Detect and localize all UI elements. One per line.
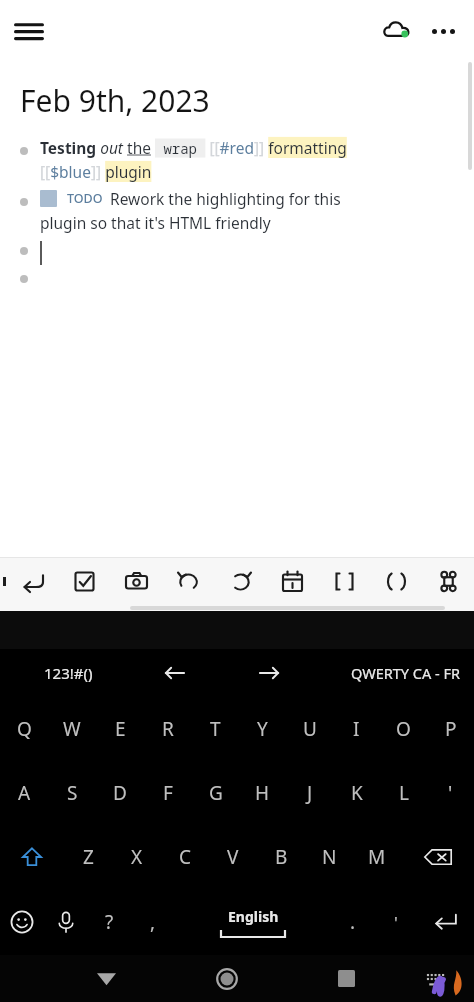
button[interactable]: More options: [420, 8, 466, 54]
button[interactable]: Emoji: [0, 889, 44, 955]
staticText: B: [275, 844, 288, 870]
button[interactable]: A: [0, 761, 48, 825]
button[interactable]: H: [239, 761, 286, 825]
button[interactable]: Backspace: [401, 825, 474, 889]
staticText: M: [368, 844, 386, 870]
button[interactable]: W: [48, 697, 96, 761]
button[interactable]: O: [380, 697, 427, 761]
button[interactable]: N: [305, 825, 353, 889]
button[interactable]: G: [192, 761, 239, 825]
staticText: D: [113, 780, 127, 806]
staticText: R: [162, 716, 174, 742]
button[interactable]: Home: [198, 955, 255, 1002]
button[interactable]: Indent: [8, 558, 59, 604]
button[interactable]: B: [257, 825, 305, 889]
button[interactable]: Bullet: [20, 198, 28, 206]
button[interactable]: D: [96, 761, 144, 825]
button[interactable]: Z: [64, 825, 113, 889]
staticText: ,: [150, 909, 156, 935]
button[interactable]: Y: [239, 697, 286, 761]
staticText: V: [227, 844, 239, 870]
staticText: U: [303, 716, 317, 742]
button[interactable]: ': [374, 889, 417, 955]
button[interactable]: Move cursor right: [246, 650, 292, 696]
button[interactable]: Switch keyboard: [406, 955, 463, 1002]
button[interactable]: QWERTY CA - FR: [351, 663, 460, 683]
staticText: J: [307, 780, 313, 806]
staticText: A: [18, 780, 31, 806]
staticText: English: [228, 907, 279, 926]
button[interactable]: ': [427, 761, 474, 825]
button[interactable]: Parentheses: [370, 558, 422, 604]
staticText: C: [179, 844, 192, 870]
staticText: ?: [105, 909, 114, 935]
staticText: S: [67, 780, 78, 806]
staticText: Feb 9th, 2023: [20, 80, 210, 121]
staticText: G: [209, 780, 223, 806]
button[interactable]: Open navigation menu: [6, 8, 52, 54]
staticText: H: [255, 780, 270, 806]
button[interactable]: I: [333, 697, 380, 761]
staticText: E: [115, 716, 126, 742]
button[interactable]: Q: [0, 697, 48, 761]
button[interactable]: T: [192, 697, 239, 761]
staticText: [[$blue]] plugin: [40, 161, 152, 182]
button[interactable]: P: [427, 697, 474, 761]
button[interactable]: J: [286, 761, 333, 825]
staticText: W: [63, 716, 81, 742]
staticText: ': [448, 780, 453, 806]
button[interactable]: X: [113, 825, 161, 889]
staticText: T: [210, 716, 221, 742]
button[interactable]: R: [144, 697, 192, 761]
staticText: K: [351, 780, 363, 806]
staticText: P: [445, 716, 457, 742]
staticText: I: [353, 716, 360, 742]
button[interactable]: Sync status: [374, 8, 420, 54]
staticText: O: [396, 716, 411, 742]
button[interactable]: K: [333, 761, 380, 825]
staticText: N: [322, 844, 337, 870]
button[interactable]: Brackets: [318, 558, 370, 604]
button[interactable]: S: [48, 761, 96, 825]
button[interactable]: 123!#(): [44, 663, 93, 683]
button[interactable]: Date: [266, 558, 318, 604]
button[interactable]: Space, English: [174, 889, 331, 955]
staticText: X: [131, 844, 143, 870]
button[interactable]: Recent apps: [318, 955, 375, 1002]
staticText: Rework the highlighting for this: [110, 188, 341, 209]
button[interactable]: Undo: [162, 558, 214, 604]
staticText: .: [350, 909, 356, 935]
button[interactable]: Bullet: [20, 247, 28, 255]
button[interactable]: Shift: [0, 825, 64, 889]
button[interactable]: F: [144, 761, 192, 825]
button[interactable]: E: [96, 697, 144, 761]
staticText: ': [394, 911, 398, 934]
button[interactable]: Move cursor left: [152, 650, 198, 696]
staticText: plugin so that it's HTML friendly: [40, 212, 271, 233]
button[interactable]: U: [286, 697, 333, 761]
button[interactable]: Camera: [110, 558, 162, 604]
button[interactable]: Bullet: [20, 147, 28, 155]
button[interactable]: Enter: [417, 889, 474, 955]
button[interactable]: V: [209, 825, 257, 889]
staticText: Q: [17, 716, 32, 742]
staticText: Y: [257, 716, 268, 742]
staticText: Testing out the wrap [[#red]] formatting: [40, 137, 347, 158]
button[interactable]: Commands: [422, 558, 474, 604]
button[interactable]: Bullet: [20, 275, 28, 283]
button[interactable]: Back, hide keyboard: [78, 955, 135, 1002]
button[interactable]: Checkbox: [59, 558, 110, 604]
staticText: Z: [83, 844, 94, 870]
button[interactable]: M: [353, 825, 401, 889]
button[interactable]: ?: [88, 889, 131, 955]
button[interactable]: C: [161, 825, 209, 889]
button[interactable]: Voice input: [44, 889, 88, 955]
button[interactable]: .: [331, 889, 374, 955]
button[interactable]: L: [380, 761, 427, 825]
staticText: F: [163, 780, 173, 806]
button[interactable]: ,: [131, 889, 174, 955]
staticText: L: [399, 780, 409, 806]
staticText: TODO: [67, 190, 103, 207]
button[interactable]: Redo: [214, 558, 266, 604]
